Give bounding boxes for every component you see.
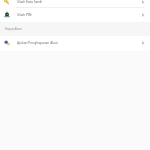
staticText: Ubah PIN [17, 13, 32, 17]
staticText: Ubah Kata Sandi [17, 0, 43, 4]
button[interactable]: Ubah Kata Sandi [0, 0, 150, 8]
button[interactable]: Ubah PIN [0, 8, 150, 22]
staticText: Ajukan Penghapusan Akun [17, 41, 59, 45]
staticText: Hapus Akun [5, 27, 22, 31]
button[interactable]: Ajukan Penghapusan Akun [0, 36, 150, 50]
